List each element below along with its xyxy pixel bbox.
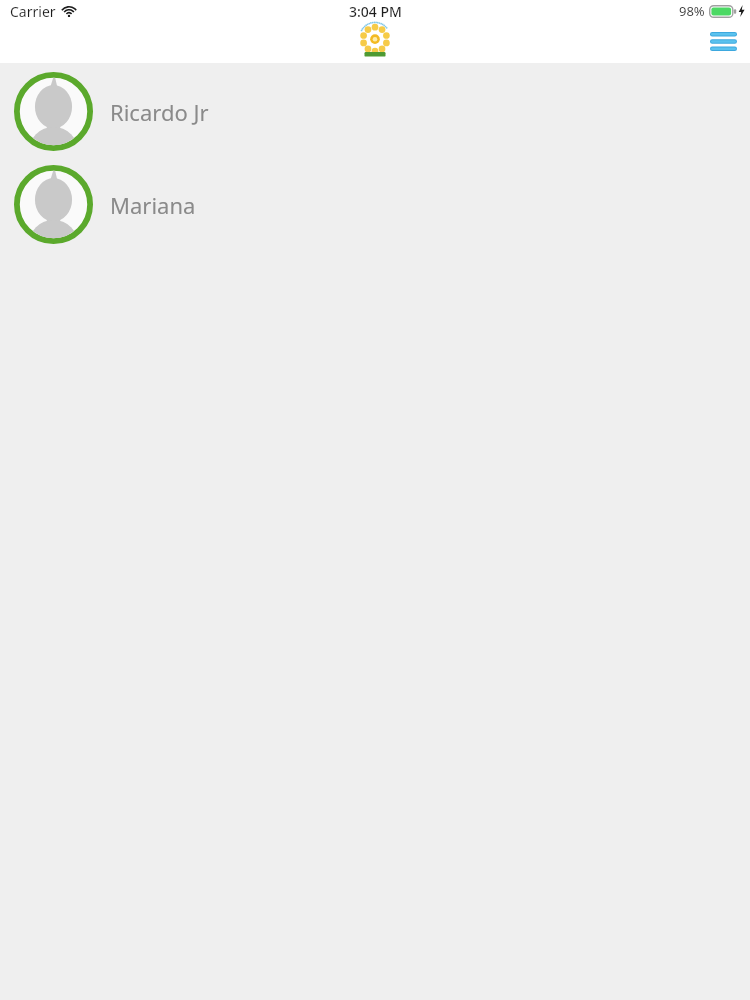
staticText: Mariana: [110, 190, 196, 220]
staticText: 98%: [679, 2, 705, 20]
button[interactable]: Avatar: [0, 165, 750, 244]
other: Avatar: [14, 165, 93, 244]
other: Avatar: [14, 72, 93, 151]
staticText: Carrier: [10, 2, 56, 21]
button[interactable]: Avatar: [0, 72, 750, 151]
staticText: Ricardo Jr: [110, 97, 209, 127]
button[interactable]: Menu: [696, 21, 750, 61]
staticText: 3:04 PM: [349, 2, 402, 21]
button[interactable]: Ecoara logo: [354, 20, 396, 60]
